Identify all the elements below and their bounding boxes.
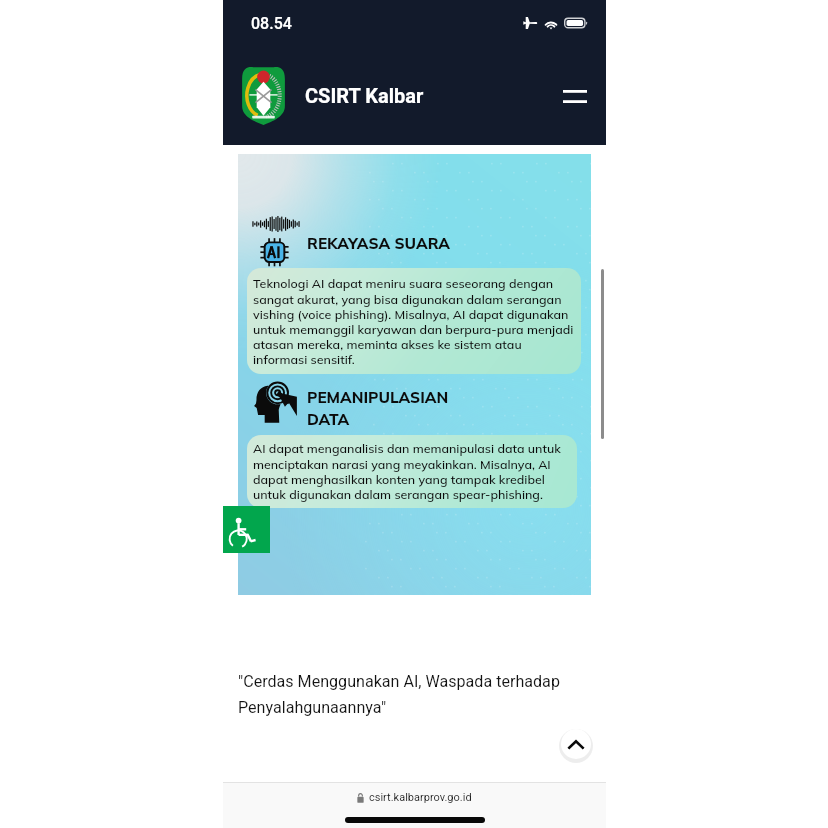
button[interactable]: Scroll to top xyxy=(561,729,591,759)
staticText: "Cerdas Menggunakan AI, Waspada terhadap… xyxy=(238,672,568,717)
staticText: AI dapat menganalisis dan memanipulasi d… xyxy=(253,441,571,503)
staticText: REKAYASA SUARA xyxy=(307,234,451,253)
staticText: 08.54 xyxy=(251,14,292,33)
staticText: csirt.kalbarprov.go.id xyxy=(369,791,472,804)
staticText: PEMANIPULASIAN DATA xyxy=(307,388,449,429)
button[interactable]: Menu xyxy=(557,78,593,114)
staticText: CSIRT Kalbar xyxy=(305,84,424,107)
button[interactable]: Accessibility options xyxy=(223,506,270,553)
staticText: Teknologi AI dapat meniru suara seseoran… xyxy=(253,276,575,368)
